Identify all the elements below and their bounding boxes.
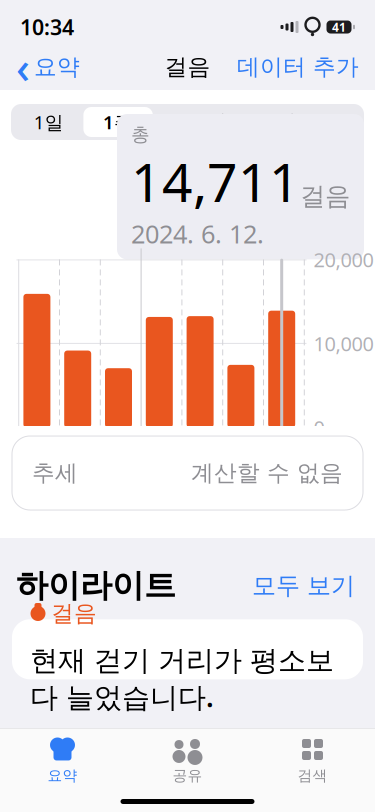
button[interactable]: 추세 bbox=[0, 426, 375, 530]
staticText: 14,711 bbox=[131, 146, 300, 217]
staticText: 모두 보기 bbox=[252, 571, 355, 600]
button[interactable]: ‹ bbox=[10, 35, 86, 99]
staticText: 1주 bbox=[103, 110, 133, 134]
staticText: 현재 걷기 거리가 평소보다 늘었습니다. bbox=[30, 643, 334, 715]
button[interactable]: 데이터 추가 bbox=[231, 49, 365, 85]
staticText: 목 bbox=[26, 441, 46, 466]
staticText: 요약 bbox=[34, 53, 80, 81]
button[interactable]: 공유 bbox=[125, 736, 250, 784]
staticText: 검색 bbox=[297, 766, 327, 784]
staticText: 데이터 추가 bbox=[237, 53, 359, 81]
button[interactable]: 1일 bbox=[14, 107, 83, 137]
staticText: 추세 bbox=[32, 459, 78, 487]
staticText: 금 bbox=[67, 441, 87, 466]
staticText: 41 bbox=[332, 19, 346, 35]
staticText: 요약 bbox=[47, 766, 77, 784]
button[interactable]: 1주 bbox=[83, 107, 153, 137]
staticText: 월 bbox=[190, 441, 210, 466]
staticText: 걸음 bbox=[164, 53, 210, 81]
staticText: 공유 bbox=[172, 766, 202, 784]
staticText: 걸음 bbox=[51, 600, 97, 627]
staticText: ‹ bbox=[16, 39, 30, 95]
button[interactable]: 검색 bbox=[250, 736, 375, 784]
staticText: 2024. 6. 12. bbox=[131, 217, 264, 250]
staticText: 계산할 수 없음 bbox=[191, 459, 343, 487]
staticText: 0 bbox=[313, 414, 324, 441]
button[interactable]: 모두 보기 bbox=[248, 567, 359, 604]
staticText: 걸음 bbox=[300, 181, 350, 212]
button[interactable]: 걸음 bbox=[0, 619, 375, 679]
staticText: 10,000 bbox=[313, 330, 373, 357]
staticText: 20,000 bbox=[313, 246, 373, 273]
staticText: 화 bbox=[230, 441, 250, 466]
staticText: 총 bbox=[131, 123, 150, 146]
staticText: 10:34 bbox=[20, 13, 74, 41]
staticText: 수 bbox=[271, 441, 291, 466]
staticText: 1일 bbox=[34, 110, 64, 134]
button[interactable]: 요약 bbox=[0, 736, 125, 784]
staticText: 하이라이트 bbox=[16, 566, 176, 605]
